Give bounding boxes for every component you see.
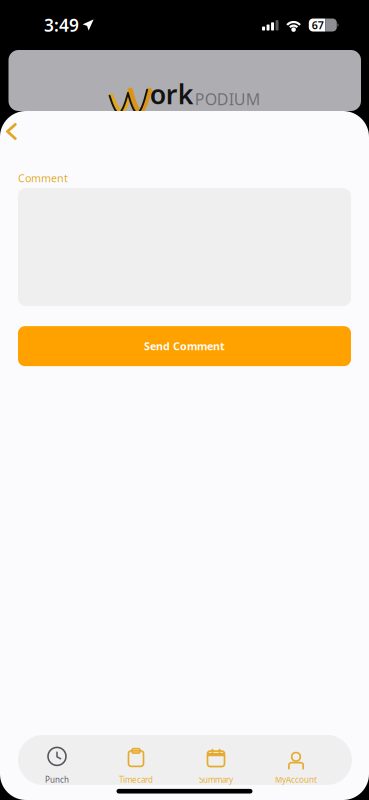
staticText: ork — [150, 76, 194, 112]
button[interactable]: Back — [0, 111, 27, 151]
staticText: Send Comment — [144, 339, 225, 353]
staticText: MyAccount — [275, 774, 317, 785]
button[interactable]: MyAccount — [256, 735, 336, 785]
staticText: 67 — [312, 18, 324, 32]
button[interactable]: Punch — [18, 735, 96, 785]
staticText: Comment — [18, 171, 68, 185]
staticText: PODIUM — [195, 88, 261, 110]
button[interactable]: Send Comment — [0, 326, 369, 366]
button[interactable]: Summary — [176, 735, 256, 785]
staticText: Punch — [45, 774, 69, 785]
staticText: Summary — [199, 774, 233, 785]
button[interactable]: Timecard — [96, 735, 176, 785]
staticText: Timecard — [119, 774, 153, 785]
staticText: 3:49 — [44, 13, 79, 36]
